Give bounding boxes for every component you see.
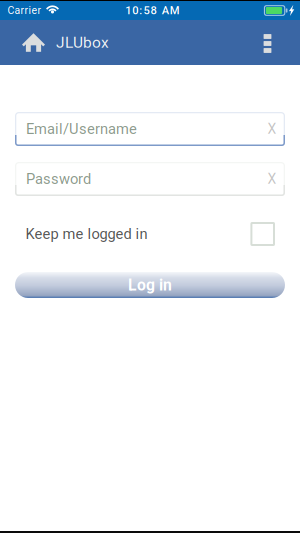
button[interactable]: Log in [15, 272, 285, 298]
staticText: JLUbox [56, 33, 109, 51]
staticText: Keep me logged in [25, 225, 147, 243]
staticText: Carrier [7, 4, 41, 17]
button[interactable]: Clear Password [260, 162, 284, 195]
button[interactable]: Keep me logged in [15, 222, 285, 246]
staticText: X [267, 121, 276, 137]
button[interactable]: More options [250, 20, 284, 65]
button[interactable]: JLUbox [15, 20, 121, 65]
staticText: X [267, 171, 276, 187]
staticText: Password [26, 170, 91, 188]
staticText: Email/Username [26, 120, 137, 138]
staticText: Log in [128, 276, 172, 294]
staticText: 10:58 AM [125, 4, 180, 17]
button[interactable]: Clear Email/Username [260, 112, 284, 145]
